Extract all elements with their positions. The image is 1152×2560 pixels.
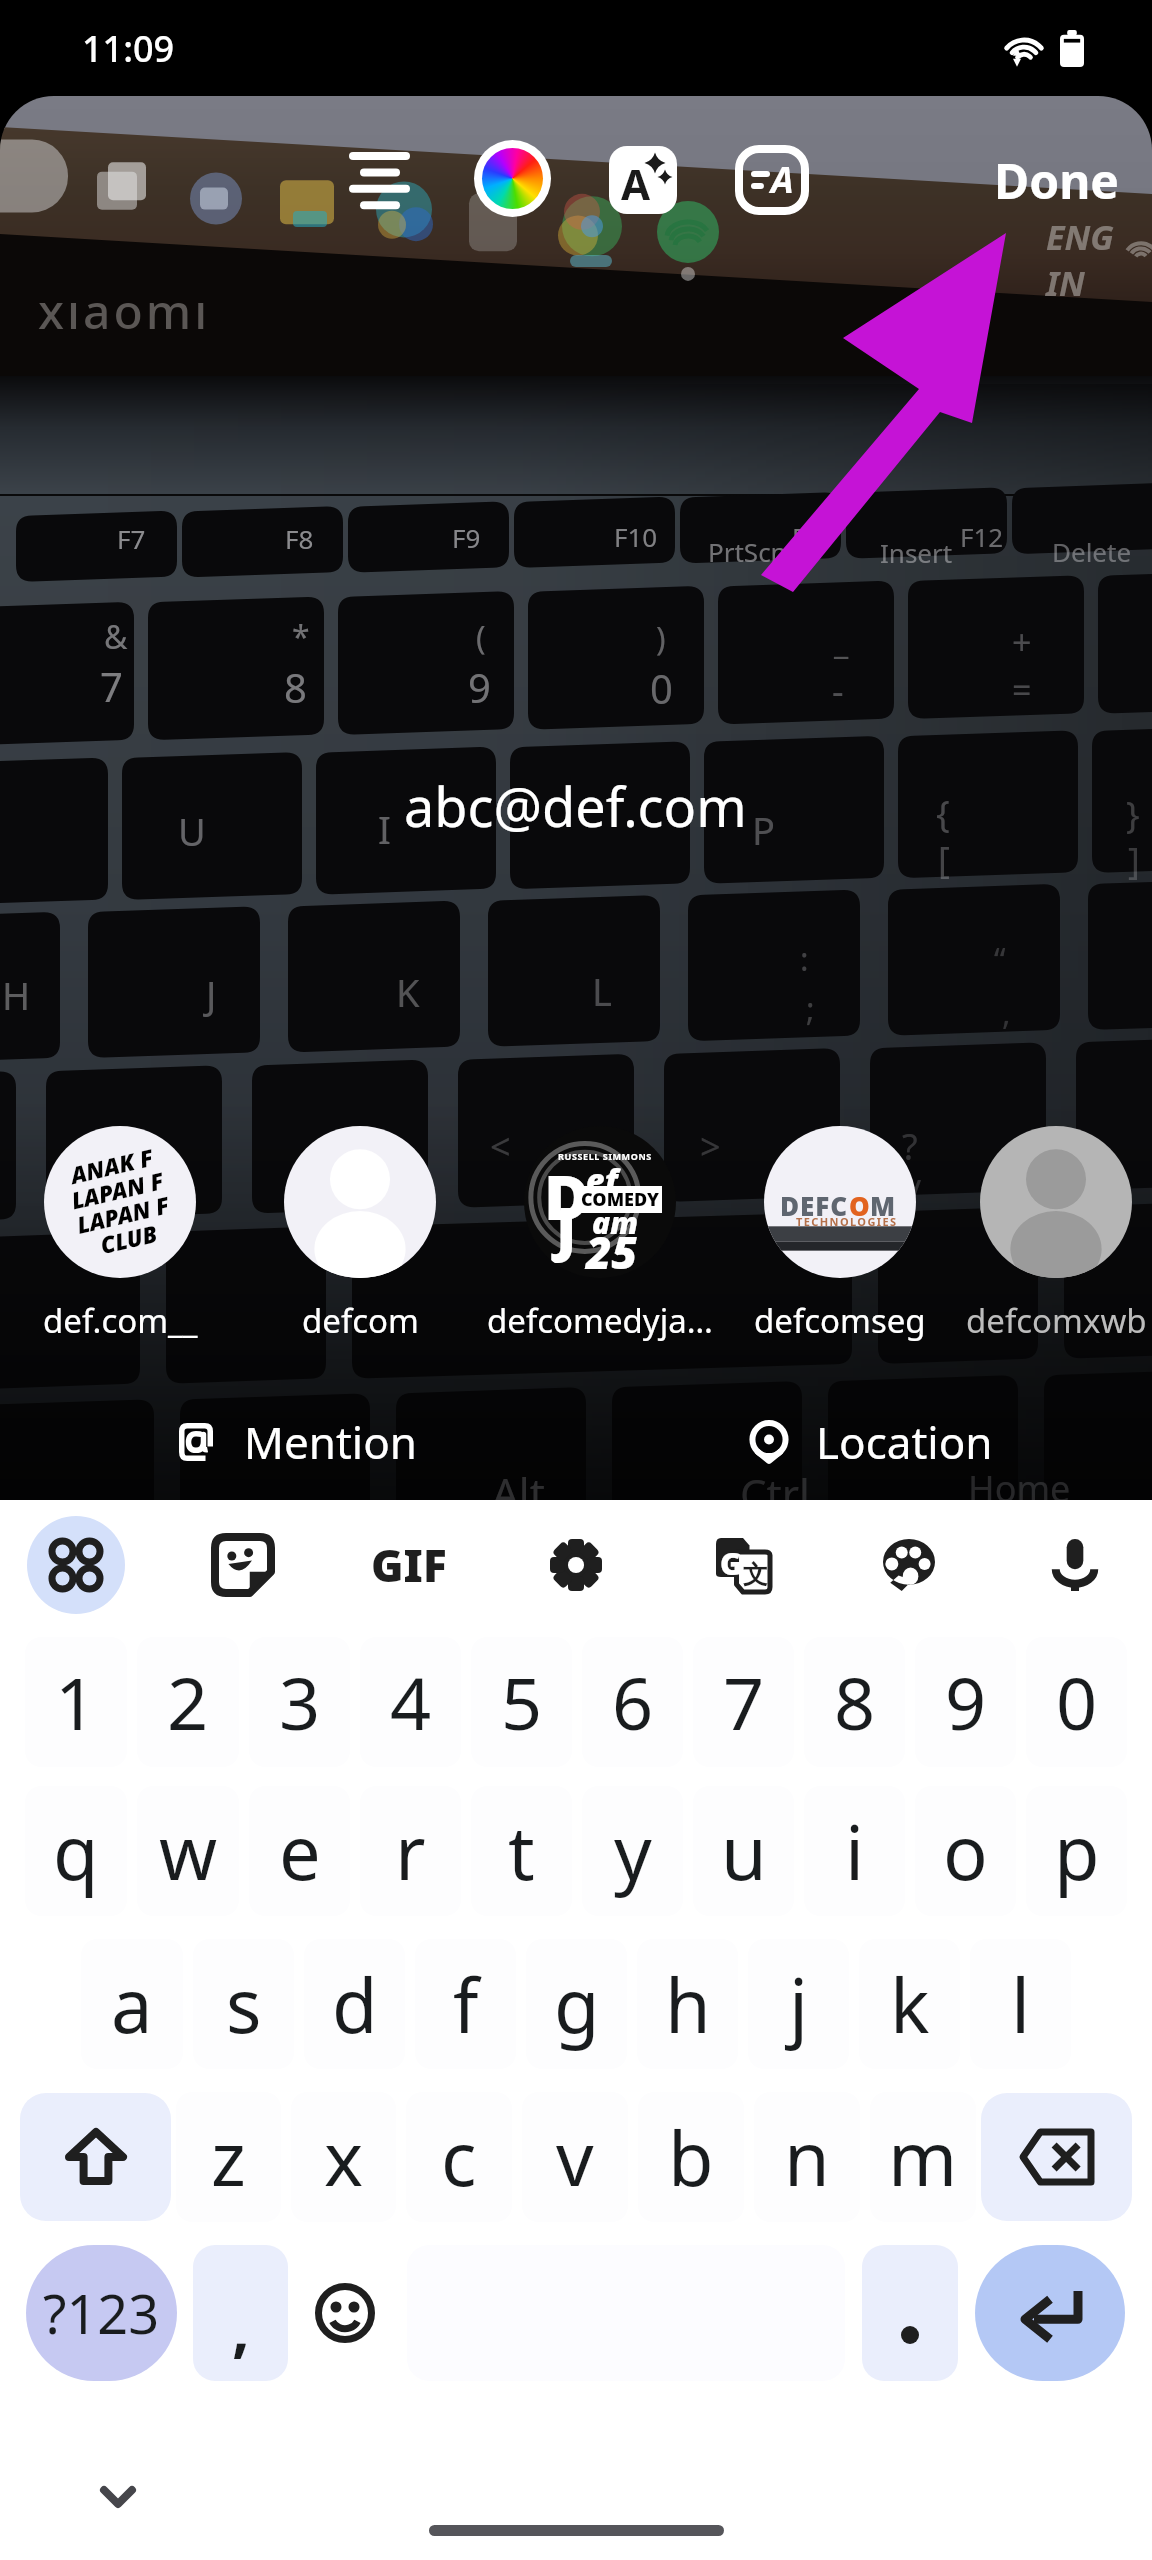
staticText: defcomseg xyxy=(754,1298,926,1343)
staticText: s xyxy=(226,1954,262,2055)
button[interactable]: , xyxy=(193,2245,288,2381)
button[interactable]: s xyxy=(193,1939,294,2069)
staticText: p xyxy=(1054,1801,1100,1902)
staticText: } xyxy=(1126,790,1140,839)
staticText: w xyxy=(159,1801,218,1902)
button[interactable]: Done xyxy=(964,124,1149,237)
staticText: 0 xyxy=(1056,1653,1098,1751)
button[interactable]: r xyxy=(360,1786,461,1916)
button[interactable]: Text style xyxy=(588,125,698,235)
button[interactable]: Settings xyxy=(520,1509,632,1621)
button[interactable]: b xyxy=(638,2092,744,2222)
button[interactable]: Theme xyxy=(853,1509,965,1621)
button[interactable]: x xyxy=(291,2092,396,2222)
staticText: _ xyxy=(834,620,849,664)
button[interactable]: n xyxy=(754,2092,860,2222)
staticText: L xyxy=(592,965,612,1017)
button[interactable]: 7 xyxy=(693,1637,794,1767)
staticText: 9 xyxy=(945,1653,987,1751)
staticText: Alt xyxy=(492,1464,545,1500)
button[interactable]: t xyxy=(471,1786,572,1916)
button[interactable]: Location xyxy=(732,1390,1012,1494)
button[interactable]: z xyxy=(176,2092,281,2222)
staticText: 5 xyxy=(501,1653,543,1751)
button[interactable]: Text alignment xyxy=(322,123,436,237)
button[interactable]: Keyboard toolbar xyxy=(20,1509,132,1621)
staticText: U xyxy=(178,805,206,857)
staticText: 4 xyxy=(390,1653,432,1751)
button[interactable]: k xyxy=(859,1939,960,2069)
staticText: RUSSELL SIMMONS xyxy=(558,1150,652,1162)
button[interactable]: DEFC xyxy=(720,1126,960,1343)
button[interactable]: m xyxy=(870,2092,976,2222)
staticText: ?123 xyxy=(43,2276,160,2350)
button[interactable]: o xyxy=(915,1786,1016,1916)
button[interactable]: v xyxy=(522,2092,628,2222)
staticText: i xyxy=(845,1801,865,1902)
staticText: Location xyxy=(816,1412,993,1472)
staticText: I xyxy=(378,803,391,855)
button[interactable]: h xyxy=(637,1939,738,2069)
staticText: 11:09 xyxy=(82,24,175,73)
staticText: , xyxy=(232,2285,250,2369)
staticText: b xyxy=(668,2107,714,2208)
button[interactable]: l xyxy=(970,1939,1071,2069)
button[interactable]: j xyxy=(748,1939,849,2069)
button[interactable]: y xyxy=(582,1786,683,1916)
button[interactable] xyxy=(862,2245,958,2381)
button[interactable]: Hide keyboard xyxy=(76,2455,160,2539)
button[interactable]: q xyxy=(25,1786,127,1916)
button[interactable]: Backspace xyxy=(981,2093,1132,2221)
button[interactable]: d xyxy=(304,1939,405,2069)
button[interactable]: Stickers xyxy=(187,1509,299,1621)
button[interactable]: a xyxy=(81,1939,183,2069)
button[interactable]: i xyxy=(804,1786,905,1916)
button[interactable]: ANAK F LAPAN F LAPAN F CLUB xyxy=(0,1126,240,1343)
button[interactable]: 5 xyxy=(471,1637,572,1767)
staticText: Mention xyxy=(244,1412,417,1472)
button[interactable]: Enter xyxy=(975,2245,1125,2381)
button[interactable]: GIF keyboard xyxy=(353,1509,465,1621)
button[interactable]: f xyxy=(415,1939,516,2069)
staticText: 25 xyxy=(586,1222,638,1278)
staticText: 3 xyxy=(279,1653,321,1751)
button[interactable]: 2 xyxy=(137,1637,239,1767)
button[interactable]: Mention xyxy=(160,1390,436,1494)
staticText: 0 xyxy=(650,661,673,715)
button[interactable]: 6 xyxy=(582,1637,683,1767)
button[interactable]: defcom xyxy=(240,1126,480,1343)
button[interactable]: Text colour xyxy=(458,124,566,232)
button[interactable]: 3 xyxy=(249,1637,350,1767)
button[interactable]: c xyxy=(406,2092,512,2222)
button[interactable]: w xyxy=(137,1786,239,1916)
button[interactable]: 9 xyxy=(915,1637,1016,1767)
button[interactable]: 1 xyxy=(25,1637,127,1767)
staticText: / xyxy=(908,1168,922,1217)
staticText: 6 xyxy=(612,1653,654,1751)
button[interactable]: 0 xyxy=(1026,1637,1127,1767)
staticText: { xyxy=(936,789,950,838)
button[interactable]: RUSSELL SIMMONS xyxy=(480,1126,720,1343)
button[interactable]: 8 xyxy=(804,1637,905,1767)
button[interactable]: Voice input xyxy=(1019,1509,1131,1621)
staticText: x xyxy=(324,2107,364,2208)
staticText: d xyxy=(332,1954,378,2055)
button[interactable]: 4 xyxy=(360,1637,461,1767)
button[interactable]: Translate xyxy=(687,1509,799,1621)
staticText: t xyxy=(508,1801,535,1902)
button[interactable]: p xyxy=(1026,1786,1127,1916)
button[interactable]: e xyxy=(249,1786,350,1916)
staticText: v xyxy=(556,2107,594,2208)
button[interactable]: ?123 xyxy=(26,2245,177,2381)
staticText: F11 xyxy=(792,519,836,554)
button[interactable]: Text background xyxy=(718,126,826,234)
staticText: ] xyxy=(1128,836,1140,885)
button[interactable]: Shift xyxy=(20,2093,171,2221)
button[interactable]: Emoji xyxy=(288,2245,401,2381)
button[interactable]: defcomxwb xyxy=(960,1126,1152,1343)
staticText: m xyxy=(888,2107,958,2208)
staticText: j xyxy=(789,1954,809,2055)
button[interactable]: u xyxy=(693,1786,794,1916)
button[interactable]: g xyxy=(526,1939,627,2069)
